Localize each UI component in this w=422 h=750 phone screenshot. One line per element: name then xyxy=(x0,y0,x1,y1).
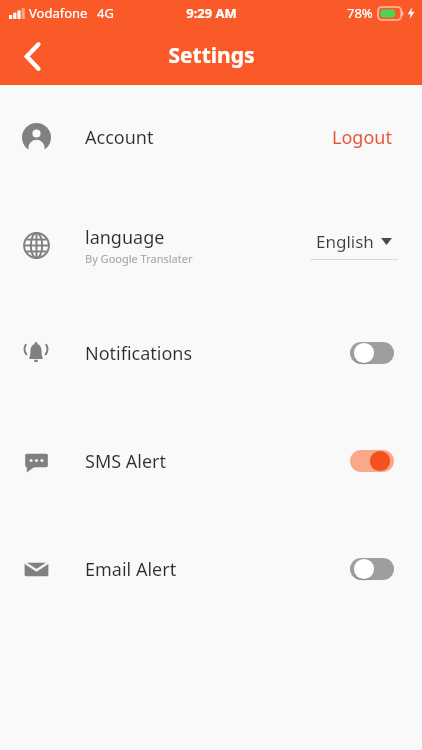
staticText: language xyxy=(85,225,165,250)
button[interactable]: Toggle SMS alert xyxy=(346,444,398,478)
staticText: By Google Translater xyxy=(85,251,193,266)
staticText: Email Alert xyxy=(85,557,177,582)
button[interactable]: Back xyxy=(11,35,53,77)
staticText: SMS Alert xyxy=(85,449,166,474)
staticText: Settings xyxy=(168,41,255,70)
staticText: 4G xyxy=(97,4,114,22)
button[interactable]: Notifications xyxy=(0,330,422,376)
staticText: 78% xyxy=(347,4,373,22)
button[interactable]: SMS Alert xyxy=(0,438,422,484)
staticText: 9:29 AM xyxy=(186,4,237,22)
staticText: English xyxy=(316,230,374,253)
staticText: Vodafone xyxy=(29,4,88,22)
button[interactable]: Email Alert xyxy=(0,546,422,592)
staticText: Notifications xyxy=(85,341,193,366)
staticText: Logout xyxy=(332,125,392,150)
button[interactable]: Logout xyxy=(326,119,398,156)
staticText: Account xyxy=(85,125,154,150)
button[interactable]: Account xyxy=(0,114,422,160)
button[interactable]: Toggle notifications xyxy=(346,336,398,370)
button[interactable]: language xyxy=(0,222,422,268)
button[interactable]: English xyxy=(310,230,398,260)
button[interactable]: Toggle email alert xyxy=(346,552,398,586)
